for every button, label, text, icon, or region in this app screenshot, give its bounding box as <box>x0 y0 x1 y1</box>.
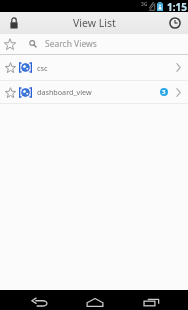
button[interactable]: Search Views <box>0 34 188 54</box>
button[interactable]: History <box>161 12 188 34</box>
button[interactable]: csc <box>0 55 188 80</box>
button[interactable]: dashboard_view <box>0 81 188 103</box>
staticText: 3 <box>162 88 166 96</box>
staticText: Search Views <box>45 38 97 50</box>
button[interactable]: Home <box>67 290 123 310</box>
staticText: csc <box>37 63 48 73</box>
button[interactable]: Recent apps <box>123 290 179 310</box>
staticText: dashboard_view <box>37 87 92 97</box>
button[interactable]: Back <box>12 290 67 310</box>
staticText: 3G <box>141 1 148 8</box>
staticText: 1:15 <box>167 0 187 12</box>
button[interactable]: Locked <box>0 12 27 34</box>
staticText: View List <box>73 16 116 30</box>
